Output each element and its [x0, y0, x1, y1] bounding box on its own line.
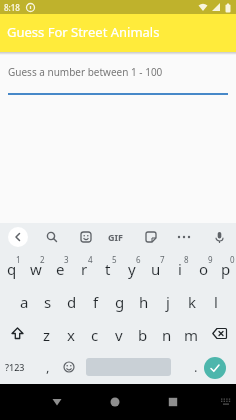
staticText: d [67, 292, 77, 312]
button[interactable]: v [107, 317, 131, 350]
button[interactable] [79, 223, 93, 251]
staticText: s [44, 292, 52, 312]
button[interactable]: d [60, 284, 84, 317]
staticText: e [56, 259, 65, 279]
button[interactable]: , [40, 350, 56, 384]
button[interactable]: p [216, 251, 236, 284]
button[interactable]: m [179, 317, 203, 350]
button[interactable]: k [180, 284, 204, 317]
button[interactable] [103, 384, 127, 420]
staticText: h [139, 292, 149, 312]
staticText: x [67, 325, 75, 345]
staticText: n [162, 325, 172, 345]
staticText: y [128, 259, 136, 279]
staticText: f [93, 292, 99, 312]
staticText: l [214, 292, 218, 312]
staticText: k [188, 292, 197, 312]
button[interactable] [161, 384, 185, 420]
button[interactable] [144, 223, 158, 251]
button[interactable]: s [36, 284, 60, 317]
staticText: u [151, 259, 161, 279]
button[interactable]: b [131, 317, 155, 350]
button[interactable]: g [108, 284, 132, 317]
staticText: b [138, 325, 148, 345]
button[interactable]: . [188, 350, 204, 384]
button[interactable]: w [24, 251, 48, 284]
button[interactable]: n [155, 317, 179, 350]
button[interactable]: a [12, 284, 36, 317]
staticText: 3 [64, 254, 69, 265]
staticText: q [7, 259, 17, 279]
staticText: , [46, 358, 50, 376]
staticText: g [115, 292, 125, 312]
staticText: a [20, 292, 29, 312]
button[interactable] [8, 227, 28, 247]
staticText: j [166, 292, 170, 312]
button[interactable] [216, 384, 236, 420]
staticText: 8 [184, 254, 189, 265]
button[interactable] [0, 317, 35, 350]
button[interactable]: j [156, 284, 180, 317]
staticText: Guess a number between 1 - 100 [8, 65, 163, 79]
staticText: 6 [136, 254, 141, 265]
staticText: 4 [88, 254, 93, 265]
button[interactable] [61, 350, 77, 384]
button[interactable] [203, 317, 236, 350]
button[interactable] [45, 223, 59, 251]
button[interactable]: e [48, 251, 72, 284]
button[interactable] [212, 223, 226, 251]
staticText: m [184, 325, 199, 345]
staticText: z [43, 325, 51, 345]
button[interactable]: Guess a number between 1 - 100 [0, 65, 236, 79]
button[interactable]: y [120, 251, 144, 284]
staticText: c [91, 325, 99, 345]
staticText: p [221, 259, 231, 279]
staticText: v [115, 325, 123, 345]
staticText: GIF [108, 231, 123, 243]
button[interactable] [204, 357, 226, 379]
button[interactable]: h [132, 284, 156, 317]
button[interactable]: u [144, 251, 168, 284]
staticText: 2 [40, 254, 45, 265]
button[interactable] [177, 223, 191, 251]
button[interactable]: f [84, 284, 108, 317]
staticText: o [199, 259, 209, 279]
button[interactable]: i [168, 251, 192, 284]
button[interactable]: q [0, 251, 24, 284]
button[interactable]: x [59, 317, 83, 350]
staticText: 5 [112, 254, 117, 265]
button[interactable] [45, 384, 69, 420]
button[interactable]: z [35, 317, 59, 350]
staticText: ?123 [5, 361, 25, 373]
button[interactable]: o [192, 251, 216, 284]
button[interactable]: GIF [108, 223, 123, 251]
staticText: i [178, 259, 182, 279]
staticText: t [105, 259, 111, 279]
staticText: 1 [16, 254, 21, 265]
staticText: Guess For Street Animals [7, 23, 160, 41]
staticText: 7 [160, 254, 165, 265]
button[interactable]: r [72, 251, 96, 284]
button[interactable]: t [96, 251, 120, 284]
staticText: r [81, 259, 88, 279]
button[interactable]: c [83, 317, 107, 350]
button[interactable]: l [204, 284, 228, 317]
staticText: 8:18 [4, 2, 20, 13]
staticText: 0 [230, 254, 235, 265]
button[interactable]: ?123 [0, 350, 29, 384]
staticText: . [194, 358, 198, 376]
staticText: w [30, 259, 42, 279]
staticText: 9 [208, 254, 213, 265]
